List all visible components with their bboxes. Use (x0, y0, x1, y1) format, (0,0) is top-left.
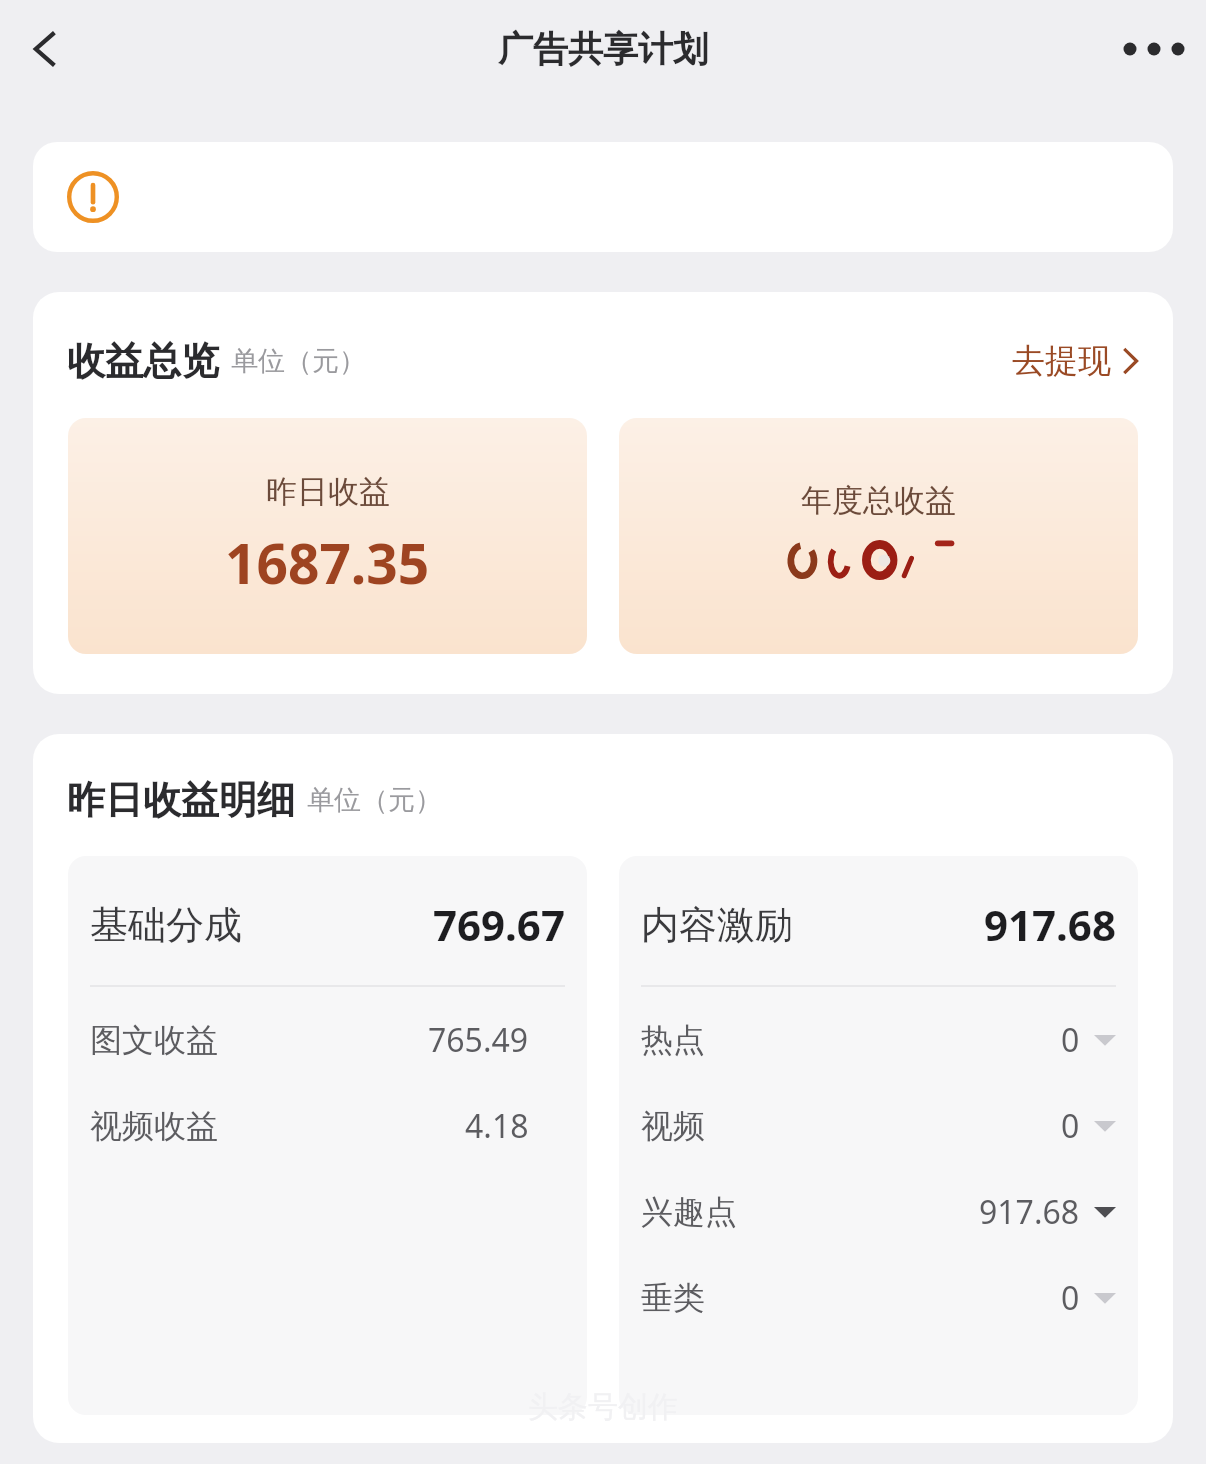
staticText: 广告共享计划 (498, 27, 708, 71)
staticText: 0 (1061, 1276, 1080, 1320)
button[interactable]: 昨日收益 (68, 418, 587, 654)
staticText: 基础分成 (90, 901, 242, 949)
staticText: 去提现 (1012, 340, 1111, 382)
staticText: 0 (1061, 1104, 1080, 1148)
button[interactable]: 热点 (641, 997, 1116, 1083)
staticText: 917.68 (979, 1190, 1080, 1234)
button[interactable]: 内容激励 (619, 856, 1138, 1415)
button[interactable]: 图文收益 (90, 997, 565, 1083)
staticText: 热点 (641, 1020, 705, 1060)
staticText: 兴趣点 (641, 1192, 737, 1232)
staticText: 4.18 (465, 1104, 529, 1148)
button[interactable]: 兴趣点 (641, 1169, 1116, 1255)
button[interactable]: 基础分成 (68, 856, 587, 1415)
button[interactable] (33, 142, 1173, 252)
staticText: 头条号创作 (528, 1388, 678, 1426)
button[interactable]: 年度总收益 (619, 418, 1138, 654)
staticText: 765.49 (428, 1018, 529, 1062)
staticText: 视频 (641, 1106, 705, 1146)
staticText: 视频收益 (90, 1106, 218, 1146)
staticText: 0 (1061, 1018, 1080, 1062)
staticText: 单位（元） (231, 344, 366, 378)
staticText: 内容激励 (641, 901, 793, 949)
button[interactable]: 去提现 (1006, 334, 1145, 388)
staticText: 收益总览 (67, 337, 219, 385)
staticText: 垂类 (641, 1278, 705, 1318)
staticText: 年度总收益 (801, 481, 956, 520)
staticText: 769.67 (433, 896, 565, 953)
staticText: 昨日收益 (266, 472, 390, 511)
button[interactable]: Back (10, 13, 82, 85)
staticText: 昨日收益明细 (67, 776, 295, 824)
button[interactable]: 视频收益 (90, 1083, 565, 1169)
button[interactable]: 垂类 (641, 1255, 1116, 1341)
staticText: 单位（元） (307, 783, 442, 817)
button[interactable]: More options (1116, 11, 1192, 87)
button[interactable]: 视频 (641, 1083, 1116, 1169)
staticText: 1687.35 (225, 525, 430, 600)
staticText: 917.68 (984, 896, 1116, 953)
staticText: 图文收益 (90, 1020, 218, 1060)
